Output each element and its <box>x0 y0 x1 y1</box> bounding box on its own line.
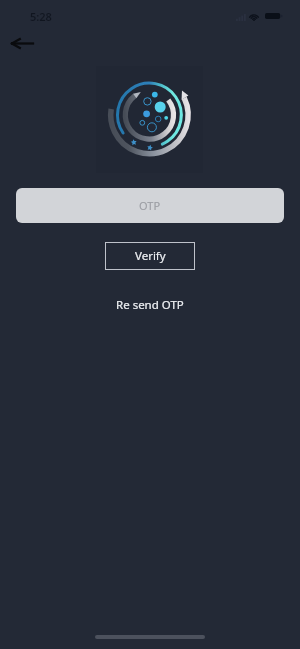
button[interactable]: Verify <box>105 242 195 270</box>
button[interactable]: OTP <box>16 188 284 223</box>
button[interactable]: Re send OTP <box>116 296 184 312</box>
staticText: OTP <box>139 198 161 213</box>
staticText: Verify <box>135 248 166 264</box>
button[interactable]: Back <box>0 27 44 59</box>
staticText: 5:28 <box>30 9 52 24</box>
staticText: Re send OTP <box>116 297 184 313</box>
